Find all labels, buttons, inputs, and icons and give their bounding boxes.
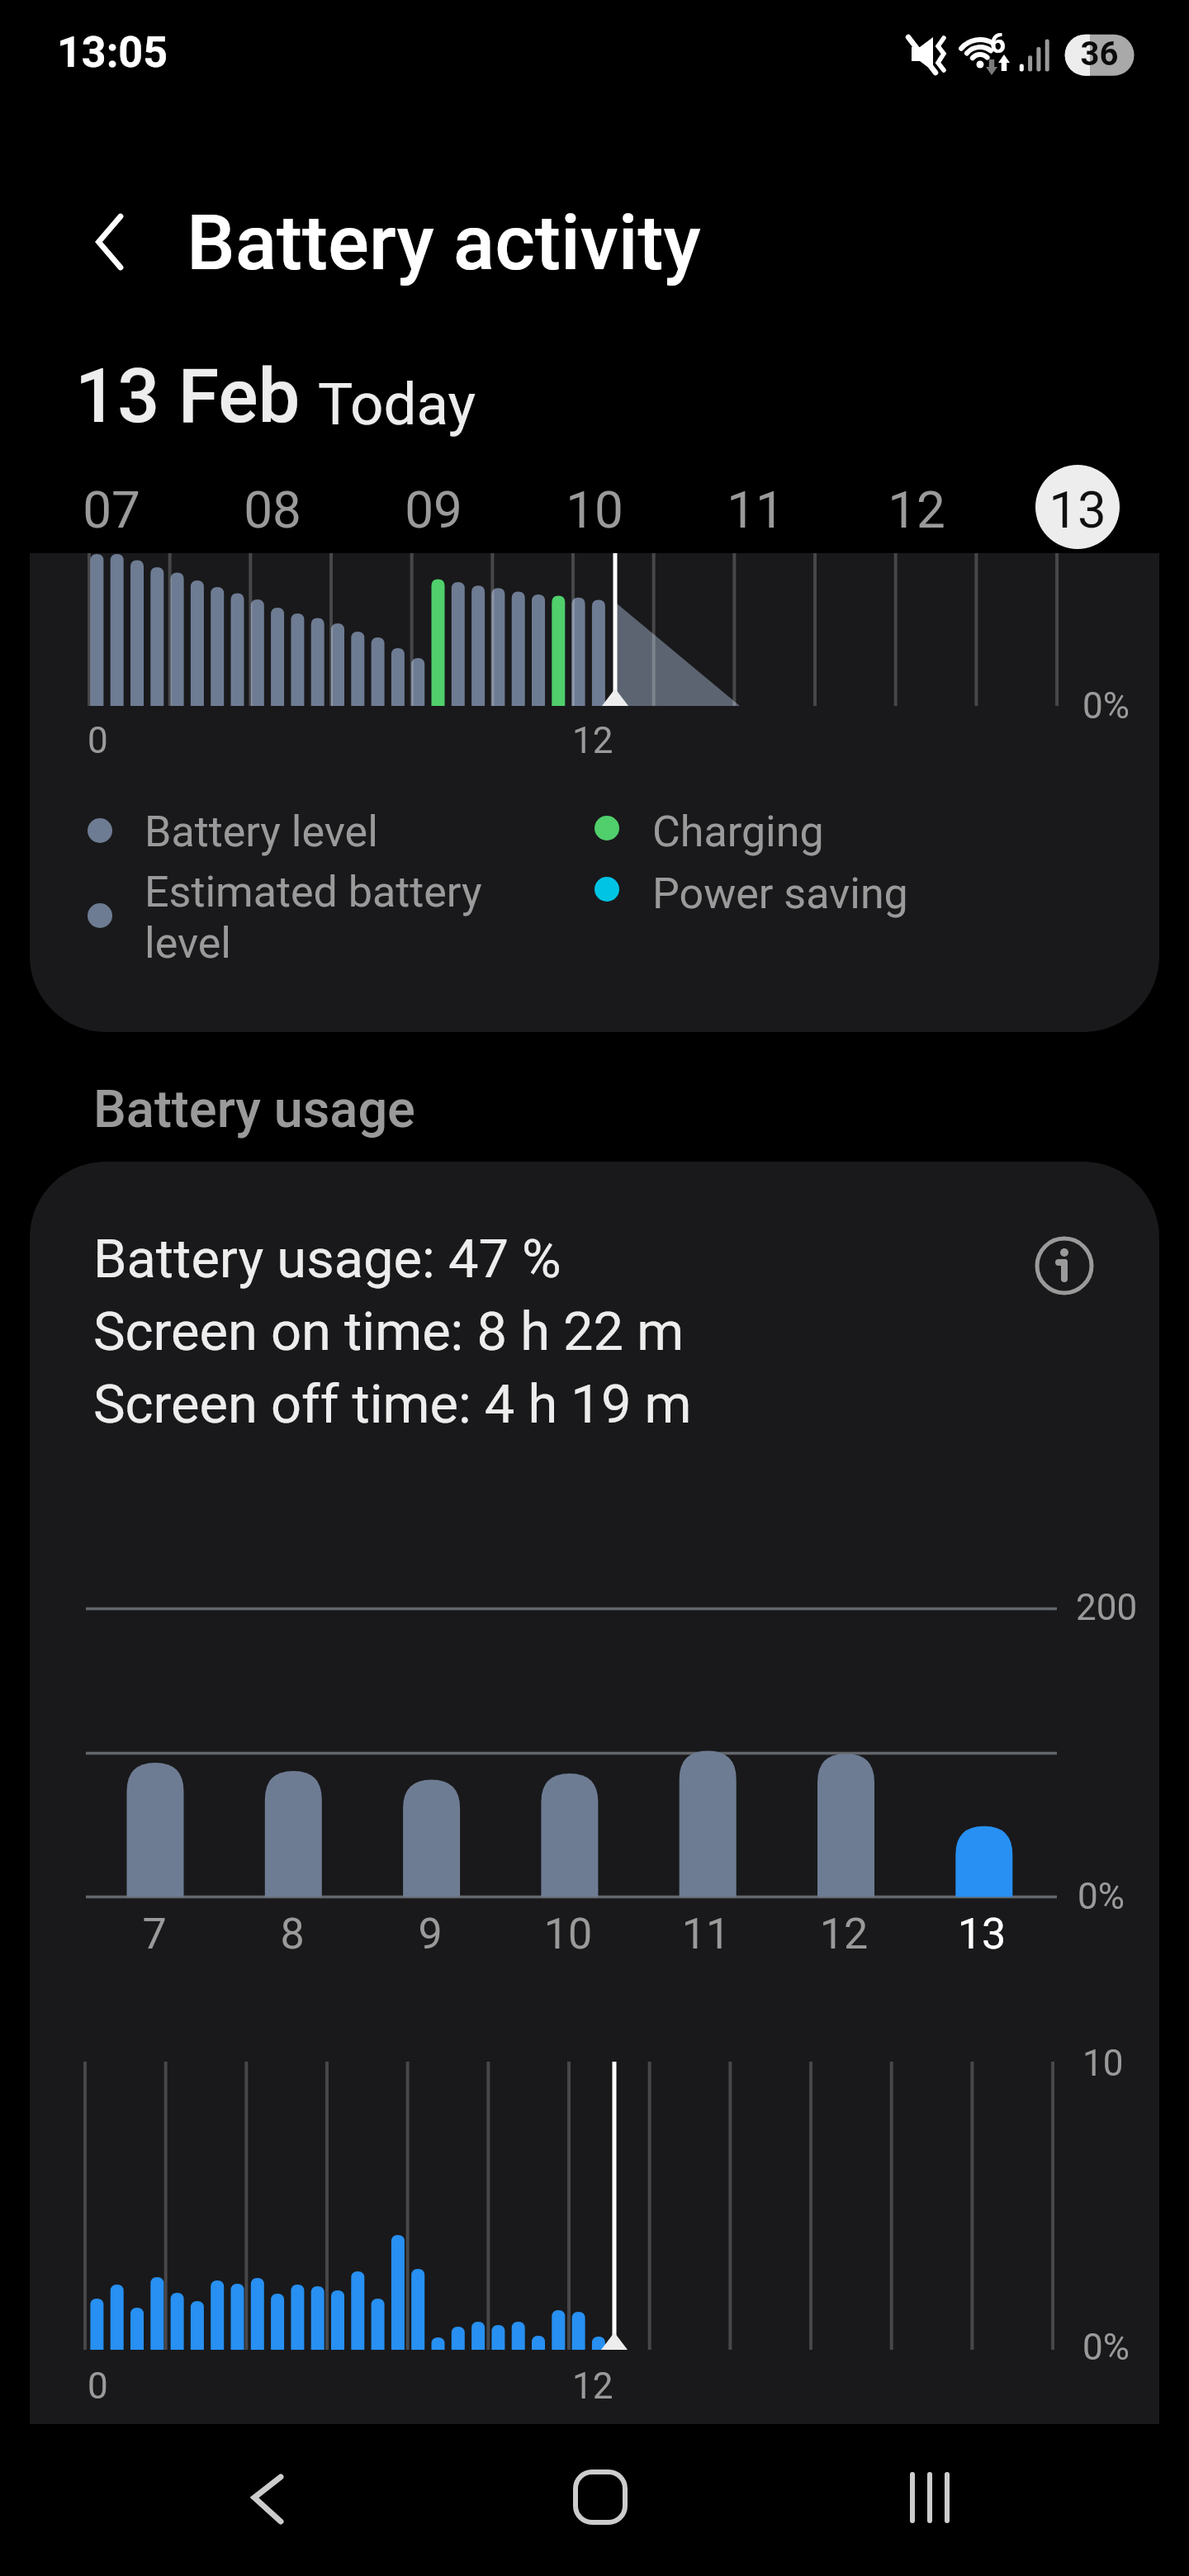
button[interactable]: Back [186, 2432, 351, 2564]
button[interactable]: Recent apps [847, 2432, 1012, 2564]
staticText: 12 [572, 719, 613, 762]
staticText: 10 [502, 1909, 634, 1959]
staticText: Battery activity [187, 198, 701, 288]
staticText: 6 [990, 27, 1006, 59]
staticText: 10 [537, 480, 652, 540]
staticText: Charging [652, 807, 824, 857]
staticText: 200 [1076, 1586, 1138, 1629]
button[interactable]: Information [1027, 1229, 1101, 1303]
staticText: 36 [1064, 35, 1135, 73]
staticText: 12 [778, 1909, 910, 1959]
staticText: Battery usage [93, 1079, 415, 1140]
staticText: Estimated battery level [144, 867, 482, 968]
staticText: 08 [215, 480, 330, 540]
staticText: Battery usage: 47 % Screen on time: 8 h … [93, 1228, 692, 1436]
staticText: 0 [88, 719, 108, 762]
staticText: 0% [1082, 684, 1130, 727]
staticText: 13:05 [57, 27, 168, 78]
staticText: Power saving [652, 869, 908, 919]
staticText: 13 [916, 1909, 1048, 1959]
staticText: 07 [54, 480, 169, 540]
staticText: 10 [1082, 2042, 1124, 2085]
staticText: Battery level [144, 807, 378, 857]
staticText: 12 [859, 480, 974, 540]
staticText: 13 Feb [75, 353, 301, 440]
staticText: 0% [1082, 2326, 1130, 2369]
staticText: 7 [88, 1909, 220, 1959]
staticText: 9 [364, 1909, 496, 1959]
staticText: 8 [226, 1909, 358, 1959]
button[interactable]: Navigate up [50, 183, 159, 301]
staticText: 11 [640, 1909, 772, 1959]
staticText: 0 [88, 2365, 108, 2408]
staticText: 13 [1020, 480, 1135, 540]
staticText: 12 [572, 2365, 613, 2408]
button[interactable]: Home [518, 2432, 683, 2564]
staticText: 0% [1078, 1875, 1125, 1918]
staticText: 09 [376, 480, 491, 540]
staticText: Today [318, 370, 476, 438]
staticText: 11 [698, 480, 813, 540]
